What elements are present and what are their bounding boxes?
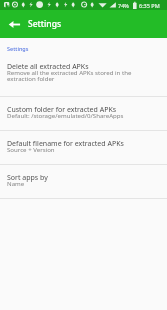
button[interactable]: Default filename for extracted APKs: [0, 131, 167, 164]
staticText: Settings: [7, 45, 29, 52]
staticText: Custom folder for extracted APKs: [7, 105, 117, 115]
staticText: Sort apps by: [7, 173, 48, 183]
button[interactable]: Sort apps by: [0, 165, 167, 198]
staticText: extraction folder: [7, 74, 55, 82]
button[interactable]: Navigate up: [4, 14, 25, 35]
button[interactable]: Custom folder for extracted APKs: [0, 97, 167, 130]
staticText: Remove all the extracted APKs stored in …: [7, 68, 132, 76]
staticText: Delete all extracted APKs: [7, 62, 89, 72]
staticText: Settings: [28, 18, 62, 30]
staticText: 6:35 PM: [139, 2, 160, 9]
button[interactable]: Delete all extracted APKs: [0, 54, 167, 96]
staticText: Source + Version: [7, 145, 55, 153]
staticText: Default filename for extracted APKs: [7, 139, 124, 149]
staticText: Name: [7, 179, 25, 187]
staticText: Default: /storage/emulated/0/ShareApps: [7, 111, 124, 119]
staticText: 74%: [118, 2, 129, 9]
